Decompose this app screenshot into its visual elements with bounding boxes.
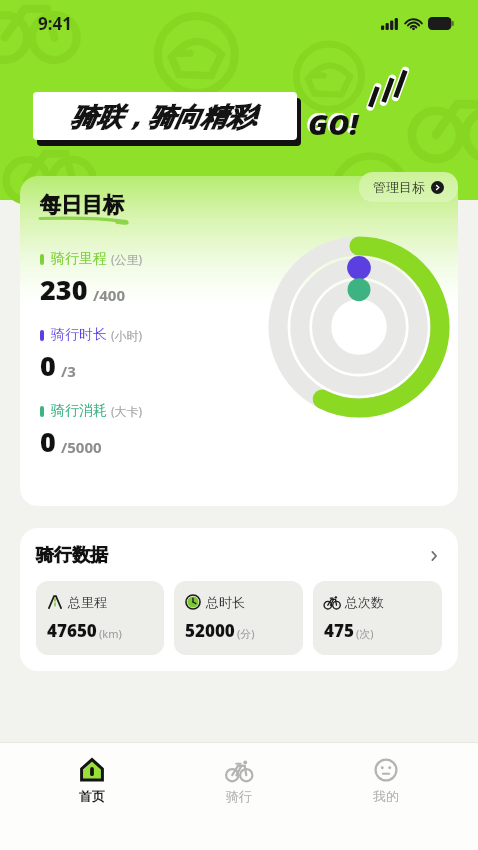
- staticText: 我的: [373, 788, 399, 804]
- staticText: (次): [356, 626, 374, 641]
- button[interactable]: 总次数: [313, 581, 442, 655]
- button[interactable]: 我的: [331, 753, 441, 808]
- button[interactable]: 骑行数据: [36, 544, 442, 567]
- staticText: 47650: [47, 619, 97, 642]
- staticText: 骑行: [226, 788, 252, 804]
- button[interactable]: 总时长: [174, 581, 303, 655]
- staticText: (km): [99, 626, 122, 641]
- staticText: 0: [40, 347, 56, 384]
- staticText: 骑行时长: [51, 326, 107, 344]
- staticText: 230: [40, 271, 88, 308]
- button[interactable]: 首页: [37, 753, 147, 808]
- staticText: 每日目标: [40, 192, 124, 218]
- staticText: (公里): [111, 251, 143, 267]
- staticText: 总里程: [68, 594, 107, 610]
- staticText: 0: [40, 423, 56, 460]
- button[interactable]: 总里程: [36, 581, 164, 655]
- staticText: 骑联，骑向精彩!: [70, 98, 260, 134]
- staticText: 首页: [79, 788, 105, 804]
- button[interactable]: 骑行: [184, 753, 294, 808]
- button[interactable]: 管理目标: [359, 172, 458, 202]
- staticText: (小时): [111, 327, 143, 343]
- staticText: (大卡): [111, 403, 143, 419]
- staticText: 总次数: [345, 594, 384, 610]
- other: 查看骑行数据: [426, 548, 442, 564]
- staticText: 9:41: [38, 12, 72, 35]
- staticText: GO!: [306, 102, 357, 141]
- staticText: 475: [324, 619, 354, 642]
- staticText: 52000: [185, 619, 235, 642]
- staticText: (分): [237, 626, 255, 641]
- staticText: GO!: [308, 104, 359, 143]
- staticText: 骑行数据: [36, 544, 108, 567]
- staticText: /5000: [61, 437, 102, 457]
- staticText: 骑行里程: [51, 250, 107, 268]
- staticText: /400: [93, 285, 125, 305]
- staticText: 骑行消耗: [51, 402, 107, 420]
- staticText: /3: [61, 361, 76, 381]
- staticText: 管理目标: [373, 179, 425, 195]
- staticText: 总时长: [206, 594, 245, 610]
